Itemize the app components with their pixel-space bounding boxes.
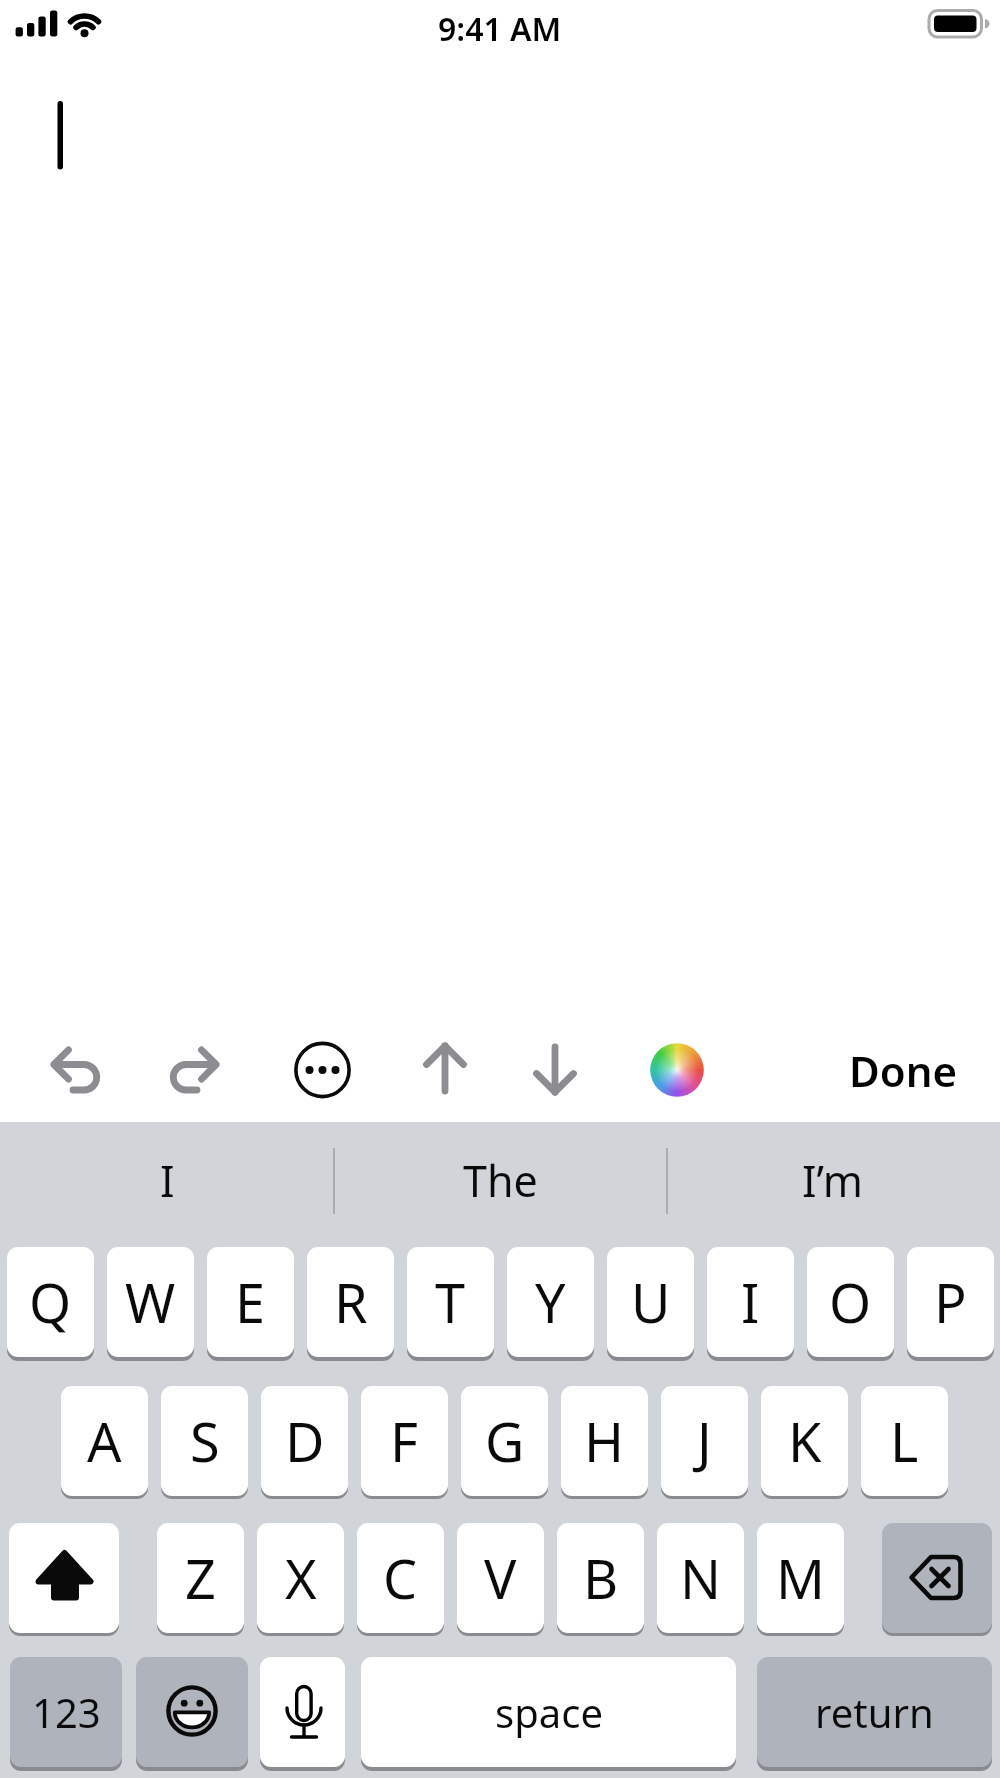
- button[interactable]: M: [757, 1523, 844, 1633]
- button[interactable]: [882, 1523, 992, 1633]
- staticText: S: [190, 1404, 220, 1478]
- staticText: The: [463, 1151, 538, 1210]
- button[interactable]: S: [161, 1386, 248, 1496]
- button[interactable]: J: [661, 1386, 748, 1496]
- staticText: F: [390, 1404, 419, 1478]
- button[interactable]: A: [61, 1386, 148, 1496]
- button[interactable]: [283, 1030, 363, 1110]
- button[interactable]: [35, 1030, 115, 1110]
- staticText: P: [934, 1265, 967, 1339]
- button[interactable]: I: [707, 1247, 794, 1357]
- button[interactable]: 123: [10, 1657, 122, 1767]
- button[interactable]: C: [357, 1523, 444, 1633]
- staticText: L: [890, 1404, 919, 1478]
- staticText: E: [235, 1265, 266, 1339]
- button[interactable]: B: [557, 1523, 644, 1633]
- staticText: X: [285, 1541, 317, 1615]
- staticText: Done: [849, 1042, 958, 1099]
- staticText: U: [631, 1265, 671, 1339]
- staticText: space: [495, 1685, 603, 1739]
- staticText: C: [383, 1541, 418, 1615]
- button[interactable]: T: [407, 1247, 494, 1357]
- button[interactable]: X: [257, 1523, 344, 1633]
- staticText: G: [485, 1404, 525, 1478]
- staticText: R: [334, 1265, 368, 1339]
- button[interactable]: R: [307, 1247, 394, 1357]
- button[interactable]: I’m: [668, 1128, 998, 1232]
- button[interactable]: G: [461, 1386, 548, 1496]
- button[interactable]: W: [107, 1247, 194, 1357]
- button[interactable]: Q: [7, 1247, 94, 1357]
- button[interactable]: P: [907, 1247, 994, 1357]
- button[interactable]: I: [2, 1128, 332, 1232]
- staticText: O: [829, 1265, 872, 1339]
- button[interactable]: H: [561, 1386, 648, 1496]
- staticText: T: [435, 1265, 466, 1339]
- button[interactable]: N: [657, 1523, 744, 1633]
- button[interactable]: V: [457, 1523, 544, 1633]
- staticText: W: [125, 1265, 176, 1339]
- staticText: V: [484, 1541, 517, 1615]
- staticText: I’m: [802, 1151, 864, 1210]
- staticText: I: [741, 1265, 760, 1339]
- button[interactable]: Done: [833, 1035, 973, 1105]
- button[interactable]: [260, 1657, 345, 1767]
- button[interactable]: return: [757, 1657, 992, 1767]
- button[interactable]: [637, 1030, 717, 1110]
- button[interactable]: K: [761, 1386, 848, 1496]
- staticText: 123: [32, 1685, 101, 1739]
- button[interactable]: E: [207, 1247, 294, 1357]
- staticText: A: [87, 1404, 122, 1478]
- button[interactable]: [157, 1030, 237, 1110]
- button[interactable]: space: [361, 1657, 736, 1767]
- button[interactable]: The: [335, 1128, 665, 1232]
- staticText: B: [583, 1541, 619, 1615]
- staticText: Z: [185, 1541, 216, 1615]
- staticText: Y: [535, 1265, 566, 1339]
- button[interactable]: Z: [157, 1523, 244, 1633]
- button[interactable]: L: [861, 1386, 948, 1496]
- staticText: N: [680, 1541, 722, 1615]
- button[interactable]: [405, 1030, 485, 1110]
- staticText: 9:41 AM: [438, 7, 562, 45]
- staticText: return: [815, 1685, 934, 1739]
- staticText: K: [788, 1404, 822, 1478]
- button[interactable]: [9, 1523, 119, 1633]
- staticText: D: [285, 1404, 325, 1478]
- staticText: Q: [29, 1265, 72, 1339]
- button[interactable]: D: [261, 1386, 348, 1496]
- staticText: J: [697, 1404, 712, 1478]
- button[interactable]: O: [807, 1247, 894, 1357]
- button[interactable]: [515, 1030, 595, 1110]
- staticText: I: [160, 1151, 175, 1210]
- button[interactable]: U: [607, 1247, 694, 1357]
- button[interactable]: [136, 1657, 248, 1767]
- staticText: H: [584, 1404, 625, 1478]
- staticText: M: [776, 1541, 825, 1615]
- button[interactable]: F: [361, 1386, 448, 1496]
- button[interactable]: Y: [507, 1247, 594, 1357]
